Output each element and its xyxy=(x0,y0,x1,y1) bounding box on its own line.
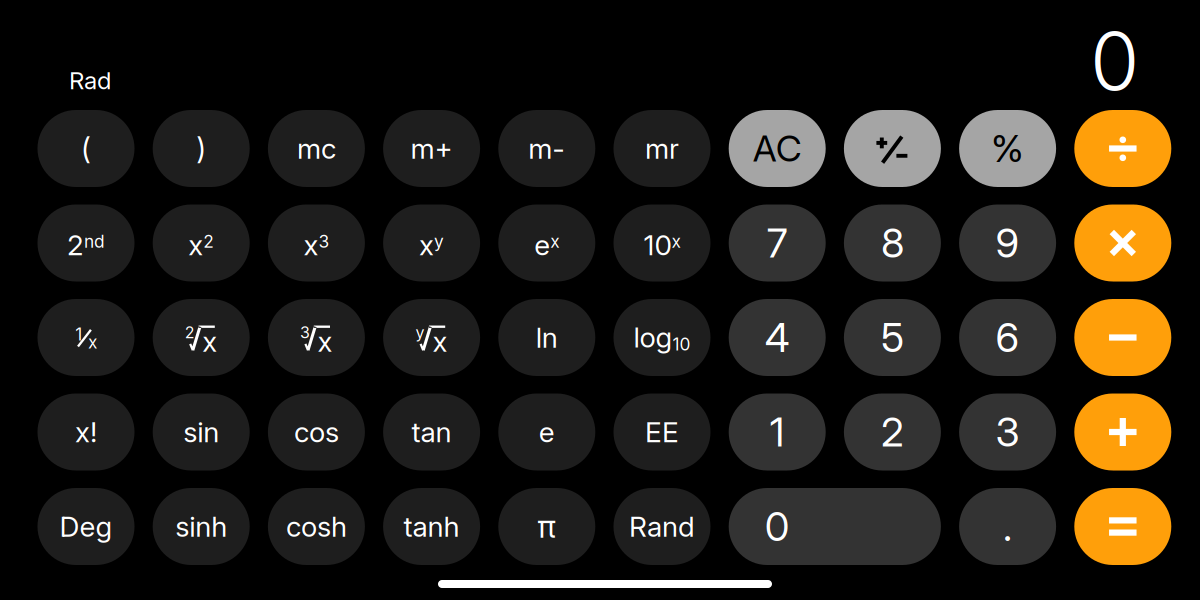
staticText: ex xyxy=(534,228,559,261)
button[interactable]: 2 xyxy=(844,393,941,470)
staticText: tanh xyxy=(404,510,460,543)
staticText: ln xyxy=(536,321,558,354)
button[interactable]: . xyxy=(959,488,1056,565)
staticText: x xyxy=(317,325,332,358)
button[interactable]: 8 xyxy=(844,204,941,281)
button[interactable]: 7 xyxy=(729,204,826,281)
button[interactable]: Plus xyxy=(1074,393,1171,470)
button[interactable]: 0 xyxy=(729,488,941,565)
button[interactable]: 4 xyxy=(729,299,826,376)
staticText: log10 xyxy=(633,321,690,354)
staticText: xy xyxy=(419,228,444,261)
staticText: x xyxy=(202,325,217,358)
button[interactable]: 9 xyxy=(959,204,1056,281)
staticText: y xyxy=(416,323,425,342)
staticText: Rad xyxy=(69,66,111,95)
staticText: x xyxy=(88,332,97,353)
staticText: 1 xyxy=(770,408,785,456)
staticText: . xyxy=(1003,502,1012,551)
staticText: m+ xyxy=(411,132,453,165)
button[interactable]: xy xyxy=(383,204,480,281)
staticText: 10x xyxy=(643,228,680,261)
button[interactable]: 5 xyxy=(844,299,941,376)
staticText: 0 xyxy=(765,502,790,551)
staticText: Rand xyxy=(629,510,695,543)
button[interactable]: Root 2 of x xyxy=(153,299,250,376)
staticText: mr xyxy=(645,132,679,165)
button[interactable]: 3 xyxy=(959,393,1056,470)
button[interactable]: ex xyxy=(498,204,595,281)
staticText: 6 xyxy=(996,313,1020,362)
staticText: 8 xyxy=(881,219,904,267)
button[interactable]: log10 xyxy=(613,299,710,376)
button[interactable]: 10x xyxy=(613,204,710,281)
staticText: ) xyxy=(196,131,206,166)
button[interactable]: mc xyxy=(268,110,365,187)
button[interactable]: ) xyxy=(153,110,250,187)
staticText: cosh xyxy=(286,510,347,543)
button[interactable]: x2 xyxy=(153,204,250,281)
button[interactable]: Rand xyxy=(613,488,710,565)
button[interactable]: tan xyxy=(383,393,480,470)
button[interactable]: ln xyxy=(498,299,595,376)
button[interactable]: x! xyxy=(37,393,134,470)
button[interactable]: ( xyxy=(37,110,134,187)
staticText: e xyxy=(539,415,555,449)
button[interactable]: Divide xyxy=(1074,110,1171,187)
staticText: π xyxy=(537,508,556,545)
staticText: 2 xyxy=(185,323,195,342)
button[interactable]: e xyxy=(498,393,595,470)
button[interactable]: Equals xyxy=(1074,488,1171,565)
button[interactable]: cosh xyxy=(268,488,365,565)
staticText: AC xyxy=(753,127,802,170)
staticText: x! xyxy=(75,415,97,449)
staticText: 3 xyxy=(300,323,310,342)
staticText: 7 xyxy=(767,219,788,267)
button[interactable]: m- xyxy=(498,110,595,187)
staticText: 9 xyxy=(996,219,1020,267)
staticText: EE xyxy=(645,415,679,449)
button[interactable]: sin xyxy=(153,393,250,470)
button[interactable]: sinh xyxy=(153,488,250,565)
staticText: % xyxy=(991,126,1024,171)
staticText: 5 xyxy=(881,313,904,362)
button[interactable]: 1 xyxy=(729,393,826,470)
staticText: m- xyxy=(528,132,565,165)
staticText: 3 xyxy=(996,408,1020,456)
staticText: Deg xyxy=(59,510,112,543)
staticText: tan xyxy=(412,415,452,449)
staticText: x2 xyxy=(188,228,214,261)
button[interactable]: 6 xyxy=(959,299,1056,376)
button[interactable]: 2nd xyxy=(37,204,134,281)
staticText: cos xyxy=(294,415,339,449)
button[interactable]: Minus xyxy=(1074,299,1171,376)
button[interactable]: Deg xyxy=(37,488,134,565)
staticText: 4 xyxy=(765,313,790,362)
staticText: 0 xyxy=(1090,13,1139,109)
button[interactable]: AC xyxy=(729,110,826,187)
button[interactable]: x3 xyxy=(268,204,365,281)
button[interactable]: π xyxy=(498,488,595,565)
staticText: x xyxy=(433,325,448,358)
staticText: ( xyxy=(81,131,91,166)
button[interactable]: Root y of x xyxy=(383,299,480,376)
staticText: sinh xyxy=(175,510,227,543)
staticText: 2 xyxy=(881,408,904,456)
button[interactable]: cos xyxy=(268,393,365,470)
button[interactable]: Multiply xyxy=(1074,204,1171,281)
button[interactable]: tanh xyxy=(383,488,480,565)
button[interactable]: m+ xyxy=(383,110,480,187)
staticText: sin xyxy=(183,415,219,449)
button[interactable]: EE xyxy=(613,393,710,470)
staticText: x3 xyxy=(303,228,329,261)
staticText: mc xyxy=(297,132,336,165)
button[interactable]: Plus or minus xyxy=(844,110,941,187)
button[interactable]: mr xyxy=(613,110,710,187)
button[interactable]: % xyxy=(959,110,1056,187)
staticText: 1 xyxy=(75,324,82,345)
button[interactable]: One over x xyxy=(37,299,134,376)
button[interactable]: Root 3 of x xyxy=(268,299,365,376)
staticText: 2nd xyxy=(67,228,105,261)
